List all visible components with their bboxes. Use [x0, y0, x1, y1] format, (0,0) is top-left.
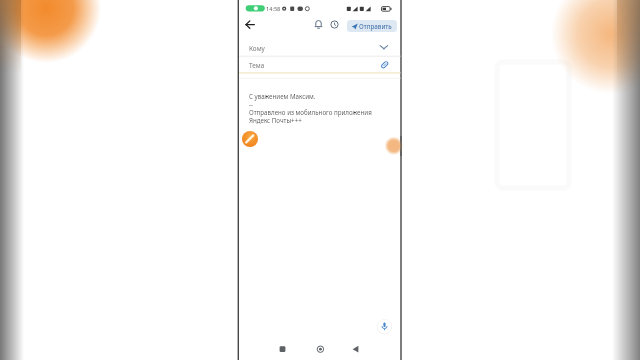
staticText: Отправлено из мобильного приложения — [249, 108, 372, 116]
button[interactable] — [377, 319, 392, 334]
staticText: Яндекс Почты+++ — [249, 116, 302, 124]
button[interactable]: Отправить — [347, 20, 397, 32]
staticText: 14:58 — [266, 5, 281, 13]
staticText: Кому — [249, 44, 265, 53]
button[interactable] — [242, 18, 256, 31]
button[interactable] — [315, 344, 326, 355]
button[interactable] — [242, 131, 258, 147]
button[interactable]: Тема — [239, 58, 400, 73]
staticText: С уважением Максим. — [249, 92, 316, 100]
staticText: Отправить — [359, 22, 392, 30]
staticText: Тема — [249, 61, 265, 70]
button[interactable] — [313, 19, 324, 30]
staticText: -- — [249, 100, 253, 108]
button[interactable] — [277, 344, 288, 355]
button[interactable] — [350, 344, 361, 355]
button[interactable]: Кому — [239, 40, 400, 56]
button[interactable] — [329, 19, 340, 30]
